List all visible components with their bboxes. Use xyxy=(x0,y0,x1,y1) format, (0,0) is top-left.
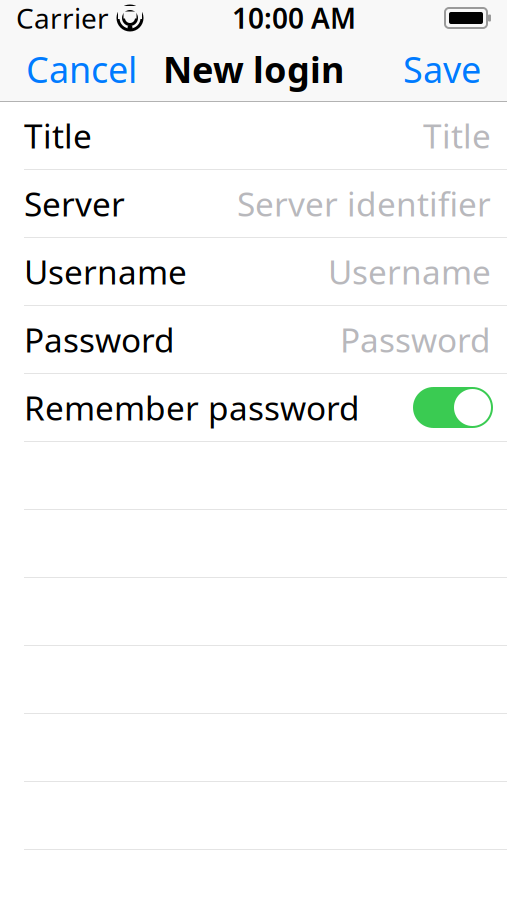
staticText: New login xyxy=(163,45,344,93)
staticText: Title xyxy=(423,113,491,158)
staticText: Password xyxy=(24,317,175,362)
button[interactable]: Save xyxy=(377,36,507,102)
staticText: Cancel xyxy=(26,45,137,93)
button[interactable]: Password xyxy=(0,306,507,373)
staticText: Username xyxy=(328,249,491,294)
button[interactable]: Cancel xyxy=(0,36,163,102)
staticText: Remember password xyxy=(24,385,360,430)
staticText: Username xyxy=(24,249,187,294)
staticText: Save xyxy=(403,45,481,93)
button[interactable]: Remember password xyxy=(413,387,493,428)
staticText: Password xyxy=(340,317,491,362)
staticText: Server identifier xyxy=(237,181,491,226)
button[interactable]: Title xyxy=(0,102,507,169)
staticText: Title xyxy=(24,113,92,158)
staticText: Carrier xyxy=(16,0,109,37)
button[interactable]: Server xyxy=(0,170,507,237)
staticText: Server xyxy=(24,181,125,226)
staticText: 10:00 AM xyxy=(232,0,356,37)
button[interactable]: Username xyxy=(0,238,507,305)
